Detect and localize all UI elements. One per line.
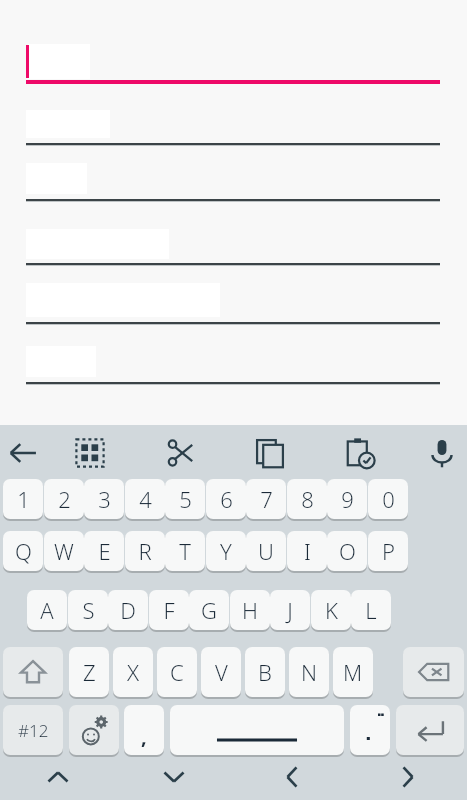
staticText: 9 — [341, 484, 354, 514]
button[interactable]: Symbols — [3, 705, 63, 755]
button[interactable]: A — [27, 590, 67, 630]
staticText: J — [287, 595, 293, 625]
button[interactable]: B — [245, 647, 285, 697]
button[interactable]: 5 — [165, 479, 205, 519]
button[interactable]: V — [201, 647, 241, 697]
button[interactable]: Voice input — [425, 436, 459, 470]
button[interactable]: Y — [206, 531, 246, 571]
staticText: U — [258, 536, 274, 566]
staticText: O — [339, 536, 356, 566]
button[interactable]: , — [124, 705, 164, 755]
button[interactable]: N — [289, 647, 329, 697]
staticText: V — [215, 657, 228, 687]
staticText: Z — [83, 657, 96, 687]
button[interactable]: D — [108, 590, 148, 630]
staticText: E — [98, 536, 111, 566]
button[interactable]: Cut — [163, 436, 197, 470]
button[interactable] — [350, 705, 390, 755]
button[interactable]: W — [44, 531, 84, 571]
staticText: B — [258, 657, 272, 687]
button[interactable]: 1 — [3, 479, 43, 519]
staticText: 6 — [220, 484, 233, 514]
staticText: 2 — [58, 484, 71, 514]
staticText: S — [82, 595, 95, 625]
button[interactable]: 2 — [44, 479, 84, 519]
button[interactable]: Backspace — [403, 647, 464, 697]
staticText: 8 — [301, 484, 314, 514]
button[interactable]: K — [311, 590, 351, 630]
button[interactable]: 0 — [368, 479, 408, 519]
staticText: G — [201, 595, 217, 625]
button[interactable]: I — [287, 531, 327, 571]
button[interactable]: Q — [3, 531, 43, 571]
staticText: 4 — [139, 484, 152, 514]
button[interactable]: Move down — [160, 763, 188, 791]
button[interactable]: Z — [69, 647, 109, 697]
button[interactable] — [28, 44, 90, 79]
staticText: L — [365, 595, 377, 625]
staticText: X — [127, 657, 140, 687]
button[interactable]: Paste — [343, 436, 377, 470]
staticText: P — [382, 536, 395, 566]
staticText: #12 — [18, 719, 49, 742]
button[interactable]: P — [368, 531, 408, 571]
button[interactable]: E — [84, 531, 124, 571]
button[interactable]: 6 — [206, 479, 246, 519]
button[interactable]: J — [270, 590, 310, 630]
button[interactable]: 7 — [246, 479, 286, 519]
staticText: , — [141, 723, 147, 750]
staticText: M — [343, 657, 363, 687]
button[interactable]: 3 — [84, 479, 124, 519]
staticText: 0 — [382, 484, 395, 514]
staticText: 1 — [17, 484, 30, 514]
button[interactable]: F — [149, 590, 189, 630]
staticText: 3 — [98, 484, 111, 514]
staticText: D — [120, 595, 136, 625]
button[interactable]: 8 — [287, 479, 327, 519]
button[interactable]: Space — [170, 705, 344, 755]
staticText: W — [54, 536, 74, 566]
button[interactable]: Back — [6, 436, 40, 470]
staticText: 5 — [179, 484, 192, 514]
button[interactable]: H — [230, 590, 270, 630]
button[interactable]: O — [327, 531, 367, 571]
staticText: T — [179, 536, 191, 566]
staticText: Y — [220, 536, 232, 566]
button[interactable]: G — [189, 590, 229, 630]
button[interactable]: R — [125, 531, 165, 571]
button[interactable]: Move up — [44, 763, 72, 791]
staticText: K — [325, 595, 338, 625]
staticText: I — [304, 536, 311, 566]
staticText: H — [242, 595, 258, 625]
button[interactable]: T — [165, 531, 205, 571]
button[interactable]: X — [113, 647, 153, 697]
staticText: F — [163, 595, 175, 625]
button[interactable]: Select all — [73, 436, 107, 470]
staticText: N — [301, 657, 318, 687]
button[interactable]: 9 — [327, 479, 367, 519]
button[interactable]: L — [351, 590, 391, 630]
button[interactable]: 4 — [125, 479, 165, 519]
button[interactable]: C — [157, 647, 197, 697]
staticText: Q — [15, 536, 32, 566]
button[interactable]: Emoji and settings — [69, 705, 119, 755]
staticText: C — [170, 657, 184, 687]
button[interactable]: M — [333, 647, 373, 697]
button[interactable]: U — [246, 531, 286, 571]
button[interactable]: Enter — [396, 705, 464, 755]
staticText: R — [138, 536, 152, 566]
button[interactable]: Move left — [278, 763, 306, 791]
button[interactable]: S — [68, 590, 108, 630]
button[interactable]: Shift — [3, 647, 63, 697]
button[interactable]: Move right — [394, 763, 422, 791]
button[interactable]: Copy — [253, 436, 287, 470]
staticText: A — [40, 595, 54, 625]
staticText: 7 — [260, 484, 273, 514]
